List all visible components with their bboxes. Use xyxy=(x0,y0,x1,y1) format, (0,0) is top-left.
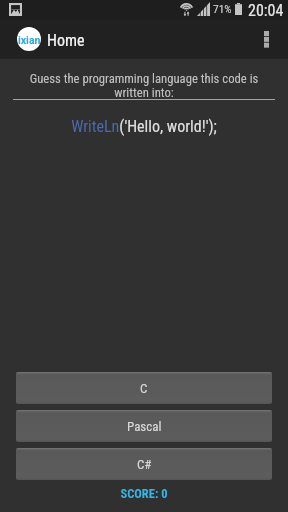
button[interactable]: Pascal xyxy=(16,410,272,442)
staticText: C xyxy=(140,381,148,396)
staticText: Pascal xyxy=(127,419,162,434)
staticText: ixian xyxy=(18,34,41,46)
staticText: 71% xyxy=(213,2,232,15)
button[interactable]: C xyxy=(16,372,272,404)
staticText: SCORE: 0 xyxy=(16,486,272,501)
staticText: Home xyxy=(47,31,85,50)
staticText: 20:04 xyxy=(248,1,284,20)
button[interactable]: More options xyxy=(246,20,288,57)
button[interactable]: C# xyxy=(16,448,272,480)
staticText: Guess the programming language this code… xyxy=(26,71,262,100)
staticText: WriteLn('Hello, world!'); xyxy=(0,117,288,136)
staticText: C# xyxy=(137,457,152,472)
